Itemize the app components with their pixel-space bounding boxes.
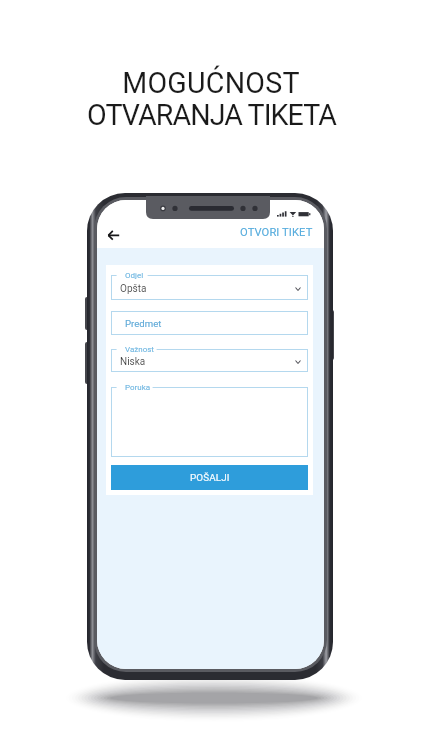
button[interactable]: POŠALJI: [111, 465, 308, 490]
staticText: Poruka: [125, 383, 151, 392]
staticText: Niska: [120, 356, 146, 368]
button[interactable]: Odjel: [111, 275, 308, 300]
button[interactable]: Poruka: [111, 387, 308, 457]
staticText: Opšta: [120, 283, 147, 295]
button[interactable]: Back: [100, 223, 125, 248]
staticText: POŠALJI: [190, 472, 230, 484]
staticText: Važnost: [125, 345, 154, 354]
staticText: MOGUĆNOST: [122, 66, 300, 100]
button[interactable]: Važnost: [111, 349, 308, 372]
button[interactable]: OTVORI TIKET: [240, 226, 313, 239]
staticText: Odjel: [125, 271, 144, 280]
staticText: Predmet: [125, 318, 162, 329]
button[interactable]: Predmet: [111, 311, 308, 335]
staticText: OTVARANJA TIKETA: [87, 98, 336, 132]
